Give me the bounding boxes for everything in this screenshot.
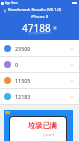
staticText: 点击查看详细跑分 [0, 31, 79, 35]
staticText: 47188 [22, 21, 51, 35]
staticText: 23500 [15, 45, 31, 52]
staticText: 立即清理 [43, 133, 55, 137]
staticText: App Store [5, 1, 18, 5]
button[interactable]: 11505 [0, 73, 79, 89]
button[interactable]: 23500 [0, 41, 79, 57]
button[interactable]: 12183 [0, 89, 79, 105]
staticText: 垃圾已满 [28, 121, 57, 130]
staticText: 11505 [15, 77, 31, 84]
button[interactable]: 0 [0, 57, 79, 73]
staticText: iPhone 8 [0, 14, 79, 20]
button[interactable]: 垃圾已满 [4, 110, 73, 141]
staticText: 0 [15, 61, 19, 68]
button[interactable]: Back [1, 7, 8, 14]
staticText: 12183 [15, 93, 31, 100]
staticText: Benchmark Results (V8.1.0) [8, 7, 62, 13]
